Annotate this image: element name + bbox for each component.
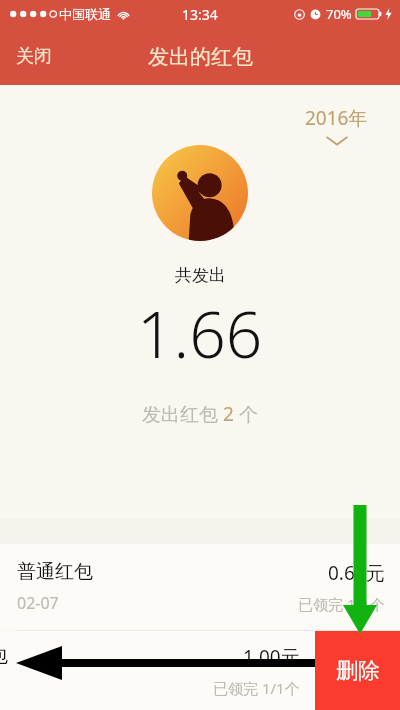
staticText: 2 [223, 401, 234, 427]
button[interactable]: 普通红包 [0, 631, 315, 710]
staticText: 已领完 1/1个 [298, 594, 385, 614]
staticText: 发出红包 [142, 401, 223, 427]
button[interactable]: 2016年 [301, 101, 372, 149]
staticText: 个 [234, 401, 258, 427]
button[interactable]: 关闭 [0, 35, 68, 78]
staticText: 关闭 [16, 45, 52, 68]
button[interactable]: 删除 [315, 631, 400, 710]
staticText: 0.66元 [328, 560, 385, 586]
staticText: 删除 [336, 657, 380, 685]
staticText: 2016年 [305, 105, 368, 131]
staticText: 1.66 [137, 290, 263, 377]
staticText: 1.00元 [243, 644, 300, 670]
button[interactable]: 普通红包 [0, 544, 400, 630]
staticText: 普通红包 [0, 644, 8, 668]
staticText: 13:34 [182, 5, 218, 24]
staticText: 发出的红包 [148, 44, 253, 70]
staticText: 02-07 [17, 592, 59, 614]
staticText: 70% [326, 5, 352, 23]
staticText: 已领完 1/1个 [213, 678, 300, 698]
staticText: 中国联通 [59, 6, 111, 22]
staticText: 普通红包 [17, 560, 93, 584]
staticText: 共发出 [175, 265, 226, 286]
